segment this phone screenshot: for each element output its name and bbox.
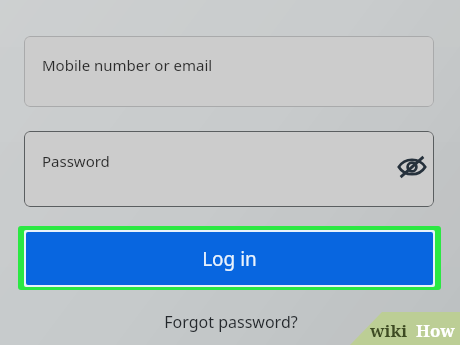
staticText: Forgot password? (164, 311, 298, 333)
button[interactable]: Mobile number or email (24, 36, 434, 107)
staticText: Log in (202, 246, 257, 272)
button[interactable]: Password (24, 131, 434, 207)
staticText: Password (42, 151, 110, 171)
button[interactable]: Show password (390, 145, 434, 189)
staticText: wiki (370, 319, 408, 342)
button[interactable]: Forgot password? (145, 306, 317, 338)
button[interactable]: Log in (18, 226, 441, 290)
staticText: Mobile number or email (42, 55, 213, 75)
staticText: How (416, 319, 455, 342)
